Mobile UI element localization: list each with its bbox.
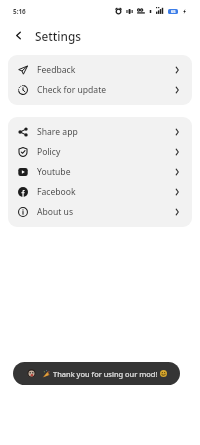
staticText: Youtube	[37, 166, 71, 178]
staticText: Feedback	[37, 64, 76, 76]
staticText: Settings	[35, 28, 81, 44]
staticText: Check for update	[37, 84, 107, 96]
button[interactable]: About us	[8, 202, 192, 222]
staticText: Share app	[37, 126, 78, 138]
button[interactable]: Feedback	[8, 60, 192, 80]
staticText: Thank you for using our mod!	[53, 369, 158, 379]
button[interactable]: Youtube	[8, 162, 192, 182]
staticText: About us	[37, 206, 74, 218]
staticText: Facebook	[37, 186, 76, 198]
staticText: 65	[171, 9, 176, 14]
button[interactable]: Thank you for using our mod!	[13, 362, 180, 385]
button[interactable]: Back	[5, 22, 31, 48]
button[interactable]: Check for update	[8, 80, 192, 100]
button[interactable]: Share app	[8, 122, 192, 142]
staticText: 5:16	[13, 7, 26, 16]
button[interactable]: Facebook	[8, 182, 192, 202]
staticText: Policy	[37, 146, 61, 158]
button[interactable]: Policy	[8, 142, 192, 162]
